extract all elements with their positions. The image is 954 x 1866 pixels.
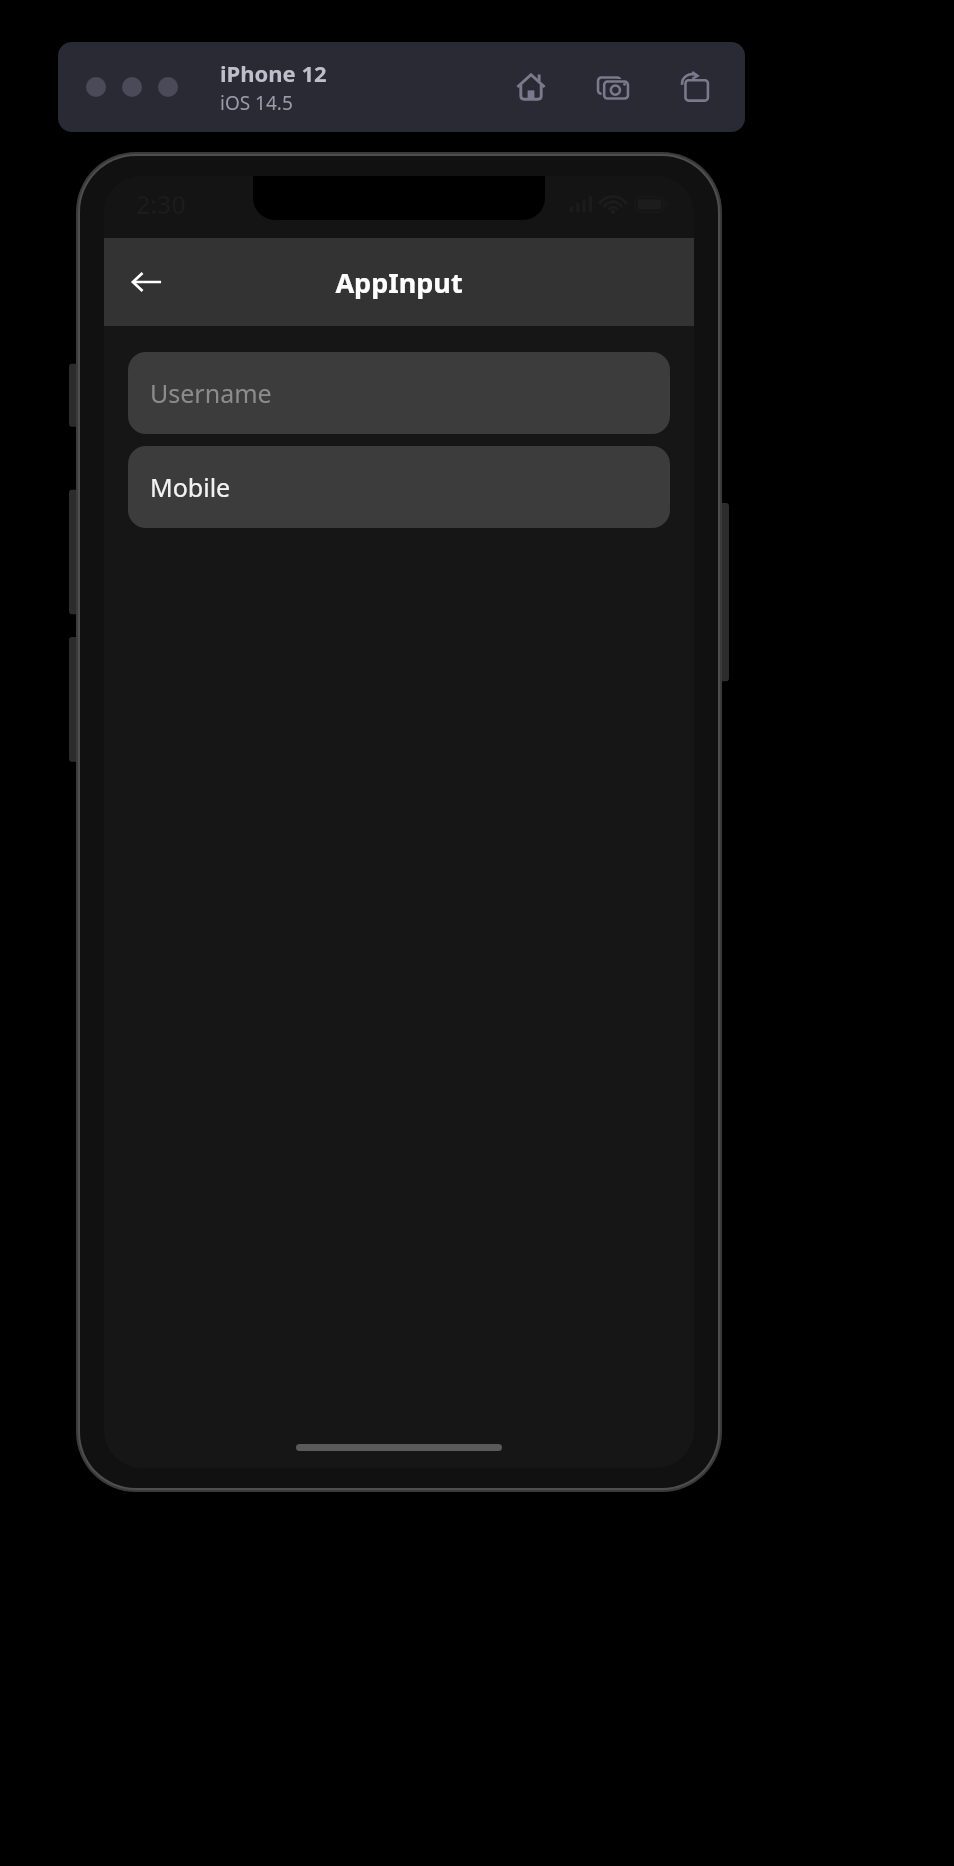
staticText: Mobile bbox=[150, 470, 231, 504]
button[interactable]: Home bbox=[509, 65, 553, 109]
staticText: iPhone 12 bbox=[220, 58, 327, 88]
staticText: AppInput bbox=[335, 264, 463, 301]
button[interactable]: Rotate bbox=[673, 65, 717, 109]
button[interactable]: Mobile bbox=[128, 446, 670, 528]
staticText: Username bbox=[150, 376, 272, 410]
button[interactable]: Back bbox=[116, 251, 178, 313]
button[interactable]: Screenshot bbox=[591, 65, 635, 109]
staticText: iOS 14.5 bbox=[220, 90, 293, 116]
button[interactable]: Username bbox=[128, 352, 670, 434]
